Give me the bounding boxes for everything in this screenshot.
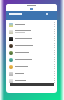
button[interactable]: More options: [6, 35, 57, 42]
button[interactable]: More options: [6, 70, 57, 77]
button[interactable]: More options: [51, 56, 57, 63]
button[interactable]: More options: [51, 28, 57, 35]
button[interactable]: More options: [51, 42, 57, 49]
button[interactable]: More options: [51, 49, 57, 56]
button[interactable]: More options: [6, 21, 57, 28]
button[interactable]: More options: [6, 63, 57, 70]
button[interactable]: More options: [51, 35, 57, 42]
button[interactable]: More options: [6, 56, 57, 63]
button[interactable]: More options: [6, 28, 57, 35]
button[interactable]: More options: [51, 63, 57, 70]
button[interactable]: More options: [51, 70, 57, 77]
button[interactable]: More options: [6, 77, 57, 84]
button[interactable]: More options: [51, 77, 57, 84]
button[interactable]: More options: [51, 21, 57, 28]
button[interactable]: More options: [6, 42, 57, 49]
button[interactable]: More options: [6, 49, 57, 56]
